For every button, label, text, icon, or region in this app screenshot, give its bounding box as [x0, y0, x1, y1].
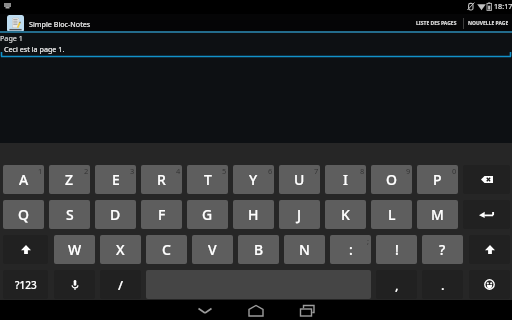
button[interactable]: S — [49, 200, 90, 229]
staticText: L — [388, 205, 396, 224]
staticText: A — [19, 170, 29, 189]
staticText: Q — [18, 205, 29, 224]
staticText: ! — [395, 240, 399, 259]
staticText: 9 — [406, 166, 411, 176]
staticText: 3 — [130, 166, 135, 176]
button[interactable]: Voice input — [54, 270, 95, 299]
staticText: Z — [65, 170, 74, 189]
staticText: ; — [367, 236, 370, 246]
staticText: ? — [439, 240, 446, 259]
staticText: 6 — [268, 166, 273, 176]
button[interactable]: U — [279, 165, 320, 194]
button[interactable]: Recent apps — [294, 300, 320, 320]
button[interactable]: K — [325, 200, 366, 229]
staticText: 5 — [222, 166, 227, 176]
staticText: D — [110, 205, 121, 224]
button[interactable]: W — [54, 235, 95, 264]
button[interactable]: . — [422, 270, 463, 299]
button[interactable]: Z — [49, 165, 90, 194]
button[interactable]: T — [187, 165, 228, 194]
button[interactable]: Shift — [3, 235, 48, 264]
staticText: W — [68, 240, 82, 259]
staticText: NOUVELLE PAGE — [468, 20, 509, 27]
staticText: B — [254, 240, 264, 259]
button[interactable]: N — [284, 235, 325, 264]
staticText: 1 — [38, 166, 43, 176]
button[interactable]: X — [100, 235, 141, 264]
staticText: P — [433, 170, 442, 189]
staticText: : — [349, 240, 353, 259]
staticText: ?123 — [15, 278, 37, 292]
staticText: H — [248, 205, 259, 224]
button[interactable]: R — [141, 165, 182, 194]
staticText: / — [118, 276, 124, 294]
staticText: K — [341, 205, 350, 224]
button[interactable]: / — [100, 270, 141, 299]
button[interactable]: B — [238, 235, 279, 264]
staticText: E — [112, 170, 120, 189]
staticText: F — [158, 205, 166, 224]
staticText: 8 — [360, 166, 365, 176]
button[interactable]: E — [95, 165, 136, 194]
staticText: I — [343, 170, 348, 189]
button[interactable]: M — [417, 200, 458, 229]
button[interactable]: NOUVELLE PAGE — [464, 14, 512, 32]
button[interactable]: , — [376, 270, 417, 299]
button[interactable]: Backspace — [463, 165, 510, 194]
button[interactable]: V — [192, 235, 233, 264]
staticText: . — [441, 276, 445, 294]
staticText: LISTE DES PAGES — [416, 20, 457, 27]
staticText: 7 — [314, 166, 319, 176]
staticText: V — [208, 240, 217, 259]
staticText: J — [297, 205, 302, 224]
button[interactable]: ?123 — [3, 270, 48, 299]
button[interactable]: C — [146, 235, 187, 264]
button[interactable]: Back — [192, 300, 218, 320]
button[interactable]: Home — [243, 300, 269, 320]
staticText: Ceci est la page 1. — [4, 44, 65, 54]
button[interactable]: Shift — [469, 235, 510, 264]
staticText: 4 — [176, 166, 181, 176]
staticText: T — [204, 170, 212, 189]
button[interactable]: ! — [376, 235, 417, 264]
staticText: 0 — [452, 166, 457, 176]
button[interactable]: L — [371, 200, 412, 229]
button[interactable]: H — [233, 200, 274, 229]
staticText: Simple Bloc-Notes — [29, 19, 91, 29]
staticText: X — [116, 240, 125, 259]
staticText: 2 — [84, 166, 89, 176]
staticText: Y — [249, 170, 258, 189]
staticText: G — [202, 205, 213, 224]
button[interactable]: LISTE DES PAGES — [410, 14, 463, 32]
staticText: 18:17 — [494, 1, 512, 11]
staticText: S — [66, 205, 74, 224]
staticText: N — [299, 240, 310, 259]
button[interactable]: : — [330, 235, 371, 264]
button[interactable]: Q — [3, 200, 44, 229]
button[interactable]: J — [279, 200, 320, 229]
button[interactable]: O — [371, 165, 412, 194]
button[interactable]: Y — [233, 165, 274, 194]
button[interactable]: G — [187, 200, 228, 229]
button[interactable]: Enter — [463, 200, 510, 229]
button[interactable]: A — [3, 165, 44, 194]
button[interactable]: ? — [422, 235, 463, 264]
button[interactable]: P — [417, 165, 458, 194]
button[interactable]: Emoji — [469, 270, 510, 299]
staticText: U — [294, 170, 305, 189]
button[interactable]: D — [95, 200, 136, 229]
button[interactable]: F — [141, 200, 182, 229]
staticText: , — [395, 276, 399, 294]
staticText: O — [386, 170, 397, 189]
button[interactable]: I — [325, 165, 366, 194]
staticText: R — [157, 170, 166, 189]
staticText: M — [431, 205, 444, 224]
staticText: C — [162, 240, 171, 259]
staticText: Page 1 — [0, 33, 23, 43]
